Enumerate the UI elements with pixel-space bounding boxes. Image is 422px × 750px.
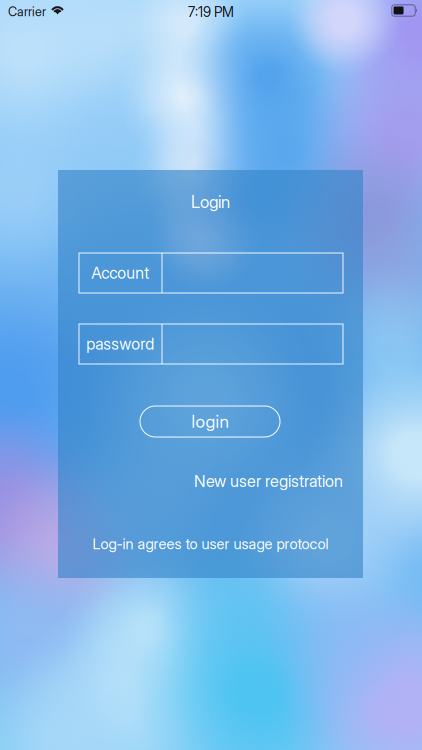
staticText: 7:19 PM [188,4,234,20]
staticText: Log-in agrees to user usage protocol [92,535,328,553]
staticText: Login [191,192,230,212]
staticText: password [86,334,154,354]
button[interactable]: Log-in agrees to user usage protocol [58,535,363,553]
staticText: Carrier [8,4,46,19]
button[interactable]: login [140,406,280,437]
button[interactable]: New user registration [79,471,343,491]
staticText: login [191,411,228,432]
staticText: New user registration [194,471,343,491]
staticText: Account [91,263,149,283]
